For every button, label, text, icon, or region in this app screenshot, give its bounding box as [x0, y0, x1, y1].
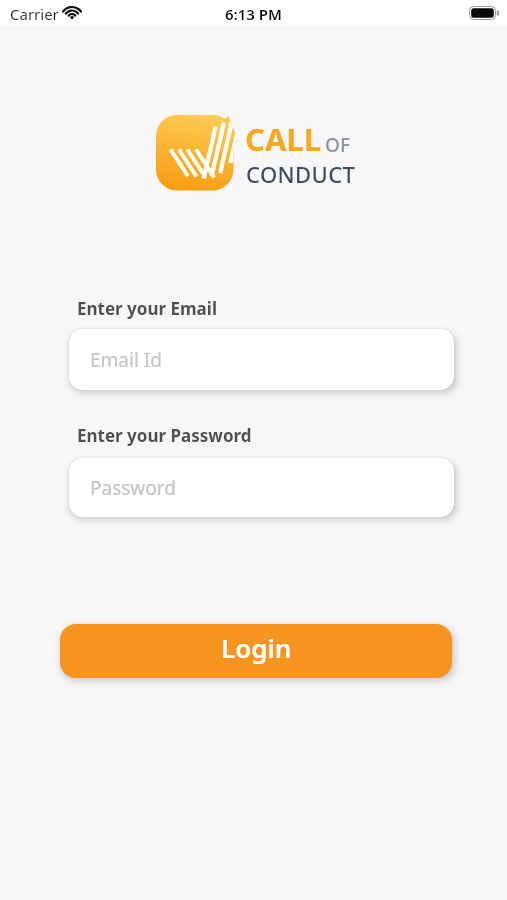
staticText: CONDUCT — [246, 159, 356, 189]
staticText: OF — [325, 132, 350, 158]
staticText: Enter your Email — [77, 297, 217, 320]
staticText: Enter your Password — [77, 424, 252, 447]
staticText: Login — [221, 630, 292, 665]
staticText: CALL — [245, 118, 322, 160]
staticText: Email Id — [90, 347, 162, 373]
staticText: Password — [90, 475, 176, 501]
staticText: Carrier — [10, 4, 59, 24]
staticText: 6:13 PM — [225, 4, 282, 24]
button[interactable]: Password — [69, 458, 454, 517]
button[interactable]: Login — [60, 624, 452, 678]
button[interactable]: Email Id — [69, 329, 454, 390]
